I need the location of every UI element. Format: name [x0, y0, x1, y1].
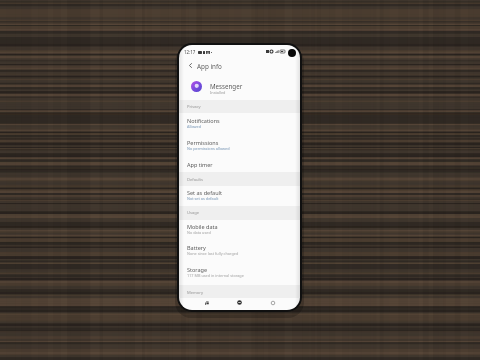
staticText: Usage	[187, 210, 200, 216]
button[interactable]: Messenger	[179, 77, 300, 99]
staticText: 12:17	[184, 49, 196, 55]
staticText: Messenger	[210, 82, 243, 90]
button[interactable]: Set as default	[179, 183, 300, 205]
staticText: None since last fully charged	[187, 251, 239, 256]
staticText: App timer	[187, 161, 213, 168]
staticText: Mobile data	[187, 223, 218, 230]
staticText: Installed	[210, 90, 226, 95]
button[interactable]: Battery	[179, 238, 300, 260]
button[interactable]: Navigate up	[179, 58, 300, 73]
button[interactable]: Permissions	[179, 133, 300, 155]
button[interactable]: Back	[267, 297, 278, 308]
staticText: Privacy	[187, 104, 201, 110]
staticText: Storage	[187, 266, 208, 273]
staticText: Battery	[187, 244, 206, 251]
staticText: Permissions	[187, 139, 219, 146]
staticText: Memory	[187, 290, 204, 296]
staticText: Not set as default	[187, 196, 219, 201]
staticText: Allowed	[187, 124, 202, 129]
staticText: Defaults	[187, 177, 204, 183]
button[interactable]: Mobile data	[179, 217, 300, 239]
button[interactable]: Recent apps	[201, 297, 212, 308]
staticText: Set as default	[187, 189, 222, 196]
button[interactable]: Home	[234, 297, 245, 308]
button[interactable]: Storage	[179, 260, 300, 282]
staticText: No data used	[187, 230, 211, 235]
staticText: App info	[197, 62, 222, 71]
staticText: Notifications	[187, 117, 220, 124]
button[interactable]: App timer	[179, 155, 300, 177]
button[interactable]: Notifications	[179, 111, 300, 133]
staticText: No permissions allowed	[187, 146, 230, 151]
staticText: 117 MB used in internal storage	[187, 273, 244, 278]
